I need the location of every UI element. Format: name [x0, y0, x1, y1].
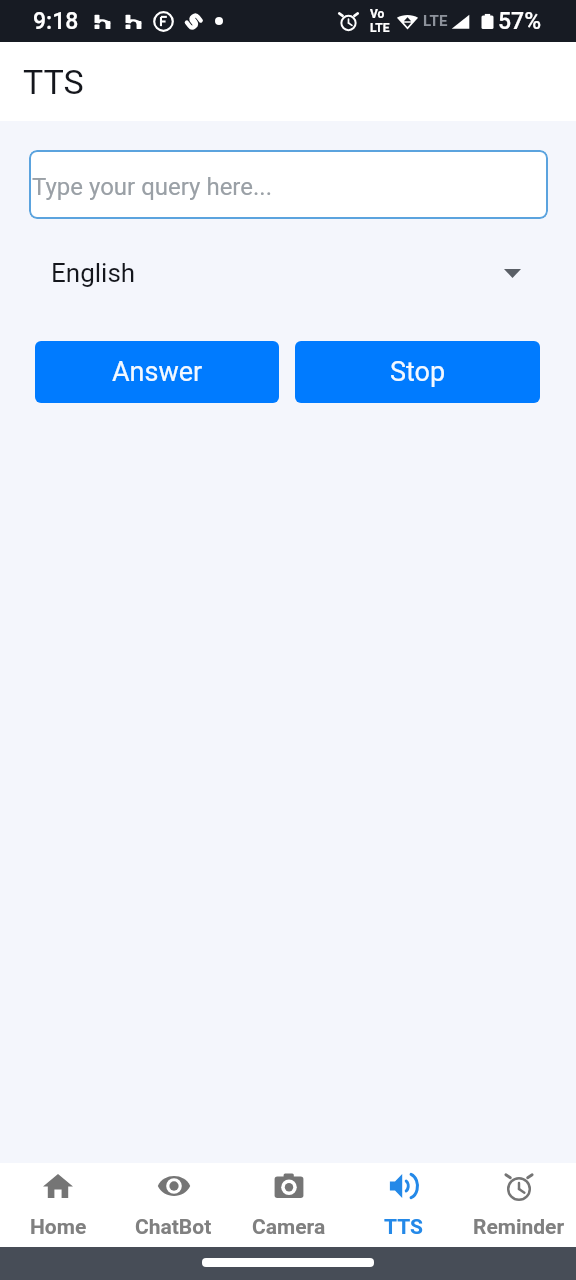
staticText: Stop [390, 356, 446, 388]
staticText: TTS [384, 1215, 423, 1240]
button[interactable]: Stop [295, 341, 540, 403]
staticText: Vo [370, 7, 385, 21]
button[interactable]: Reminder [461, 1163, 576, 1247]
button[interactable]: TTS [346, 1163, 461, 1247]
button[interactable]: Type your query here... [29, 150, 548, 219]
staticText: ChatBot [135, 1215, 212, 1240]
button[interactable]: Camera [231, 1163, 346, 1247]
button[interactable]: English [29, 240, 548, 306]
button[interactable]: Answer [35, 341, 279, 403]
staticText: Type your query here... [32, 173, 272, 201]
button[interactable]: Home [0, 1163, 116, 1247]
staticText: Home [30, 1215, 87, 1240]
staticText: Reminder [473, 1215, 565, 1240]
staticText: LTE [423, 12, 448, 30]
staticText: 9:18 [33, 8, 79, 35]
button[interactable]: ChatBot [116, 1163, 231, 1247]
staticText: 57% [498, 8, 542, 35]
staticText: English [51, 258, 136, 288]
staticText: TTS [23, 62, 84, 102]
staticText: Answer [112, 356, 203, 388]
staticText: Camera [252, 1215, 326, 1240]
staticText: LTE [370, 21, 390, 35]
